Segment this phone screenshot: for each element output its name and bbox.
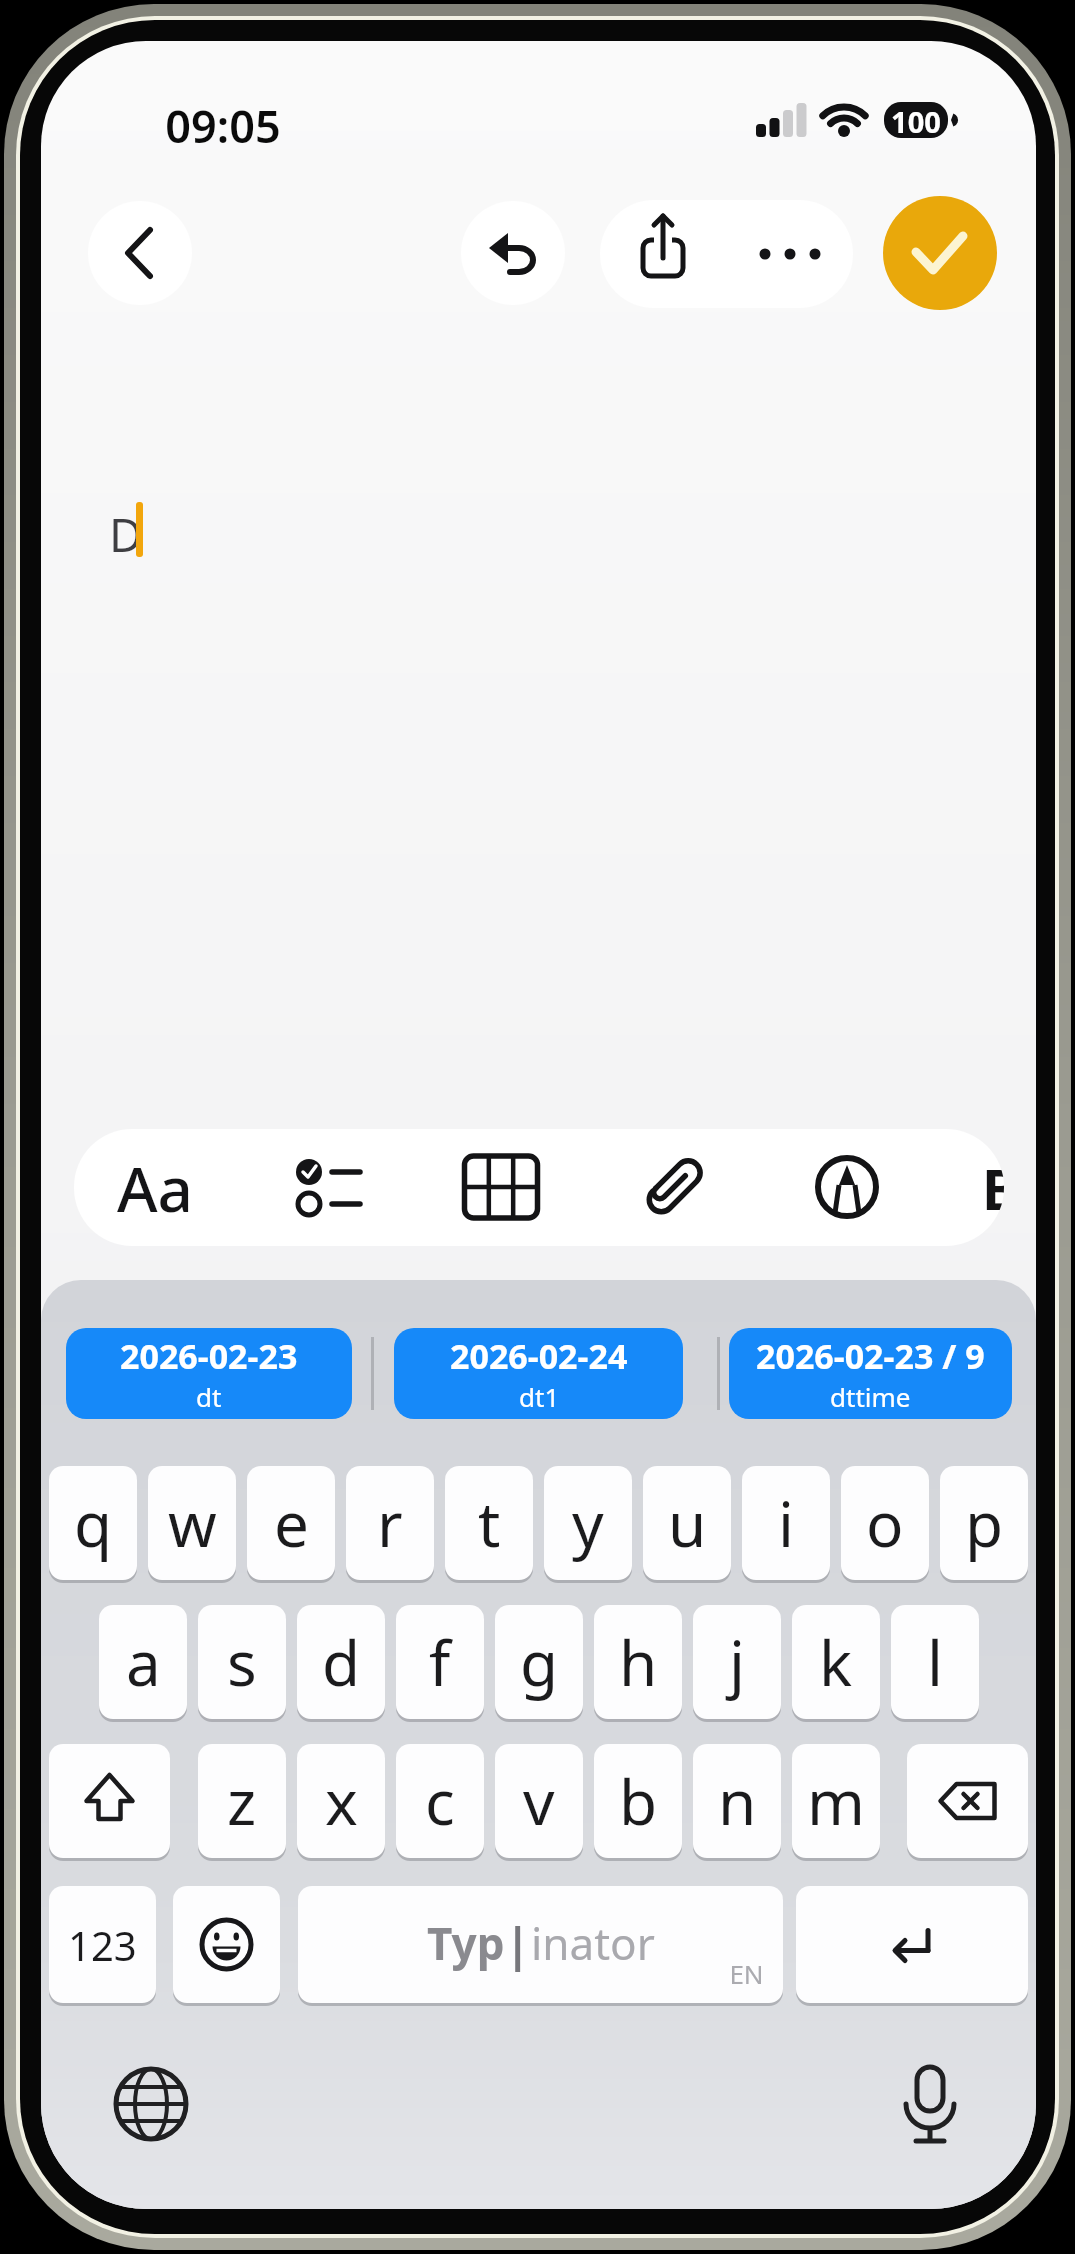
staticText: k xyxy=(819,1620,853,1704)
button[interactable]: f xyxy=(396,1605,484,1719)
button[interactable]: y xyxy=(544,1466,632,1580)
button[interactable]: d xyxy=(297,1605,385,1719)
button[interactable]: e xyxy=(247,1466,335,1580)
button[interactable]: 2026-02-23 / 9 xyxy=(729,1328,1012,1419)
staticText: s xyxy=(227,1620,257,1704)
button[interactable]: n xyxy=(693,1744,781,1858)
staticText: | xyxy=(505,1913,531,1976)
staticText: 09:05 xyxy=(165,95,281,150)
staticText: r xyxy=(377,1481,403,1565)
button[interactable]: r xyxy=(346,1466,434,1580)
staticText: h xyxy=(619,1620,658,1704)
staticText: d xyxy=(322,1620,361,1704)
button[interactable]: g xyxy=(495,1605,583,1719)
button[interactable]: s xyxy=(198,1605,286,1719)
button[interactable]: w xyxy=(148,1466,236,1580)
staticText: a xyxy=(126,1620,161,1704)
button[interactable] xyxy=(49,1744,170,1858)
button[interactable] xyxy=(461,201,565,305)
button[interactable]: k xyxy=(792,1605,880,1719)
button[interactable]: c xyxy=(396,1744,484,1858)
staticText: v xyxy=(523,1759,555,1843)
button[interactable]: 2026-02-23 xyxy=(66,1328,352,1419)
button[interactable]: x xyxy=(297,1744,385,1858)
button[interactable]: a xyxy=(99,1605,187,1719)
staticText: i xyxy=(778,1481,794,1565)
staticText: y xyxy=(572,1481,604,1565)
button[interactable] xyxy=(101,2054,201,2154)
button[interactable] xyxy=(173,1886,280,2003)
button[interactable] xyxy=(607,1129,742,1246)
staticText: 2026-02-23 xyxy=(120,1333,298,1379)
staticText: t xyxy=(478,1481,501,1565)
staticText: Typ xyxy=(427,1913,505,1973)
button[interactable]: j xyxy=(693,1605,781,1719)
button[interactable]: i xyxy=(742,1466,830,1580)
staticText: dt1 xyxy=(519,1379,560,1414)
button[interactable] xyxy=(600,200,726,308)
button[interactable]: t xyxy=(445,1466,533,1580)
staticText: 123 xyxy=(68,1918,137,1972)
button[interactable]: p xyxy=(940,1466,1028,1580)
button[interactable]: 123 xyxy=(49,1886,156,2003)
button[interactable] xyxy=(434,1129,569,1246)
staticText: l xyxy=(927,1620,943,1704)
staticText: 2026-02-24 xyxy=(450,1333,628,1379)
button[interactable] xyxy=(880,2054,980,2154)
button[interactable] xyxy=(298,1886,783,2003)
staticText: o xyxy=(866,1481,904,1565)
button[interactable] xyxy=(907,1744,1028,1858)
button[interactable] xyxy=(883,196,997,310)
staticText: n xyxy=(718,1759,757,1843)
button[interactable] xyxy=(780,1129,915,1246)
button[interactable] xyxy=(726,200,853,308)
staticText: EN xyxy=(729,1956,764,1991)
staticText: dttime xyxy=(830,1379,911,1414)
staticText: w xyxy=(168,1481,217,1565)
button[interactable]: v xyxy=(495,1744,583,1858)
button[interactable]: h xyxy=(594,1605,682,1719)
staticText: f xyxy=(429,1620,451,1704)
button[interactable]: b xyxy=(594,1744,682,1858)
staticText: 100 xyxy=(891,102,941,138)
staticText: dt xyxy=(196,1379,222,1414)
staticText: u xyxy=(668,1481,707,1565)
staticText: x xyxy=(325,1759,358,1843)
staticText: q xyxy=(74,1481,113,1565)
staticText: p xyxy=(965,1481,1004,1565)
button[interactable]: z xyxy=(198,1744,286,1858)
button[interactable]: l xyxy=(891,1605,979,1719)
staticText: 2026-02-23 / 9 xyxy=(756,1333,985,1379)
button[interactable] xyxy=(796,1886,1028,2003)
button[interactable] xyxy=(261,1129,396,1246)
button[interactable]: u xyxy=(643,1466,731,1580)
button[interactable]: Aa xyxy=(90,1129,220,1246)
button[interactable]: 2026-02-24 xyxy=(394,1328,683,1419)
staticText: e xyxy=(274,1481,309,1565)
staticText: B xyxy=(982,1150,1004,1226)
staticText: D xyxy=(109,503,143,566)
staticText: c xyxy=(425,1759,455,1843)
staticText: Aa xyxy=(117,1146,194,1230)
button[interactable] xyxy=(88,201,192,305)
button[interactable]: o xyxy=(841,1466,929,1580)
staticText: m xyxy=(807,1759,865,1843)
staticText: inator xyxy=(531,1913,655,1973)
staticText: j xyxy=(729,1620,745,1704)
staticText: z xyxy=(227,1759,257,1843)
button[interactable]: q xyxy=(49,1466,137,1580)
staticText: g xyxy=(520,1620,559,1704)
staticText: b xyxy=(619,1759,658,1843)
button[interactable]: m xyxy=(792,1744,880,1858)
